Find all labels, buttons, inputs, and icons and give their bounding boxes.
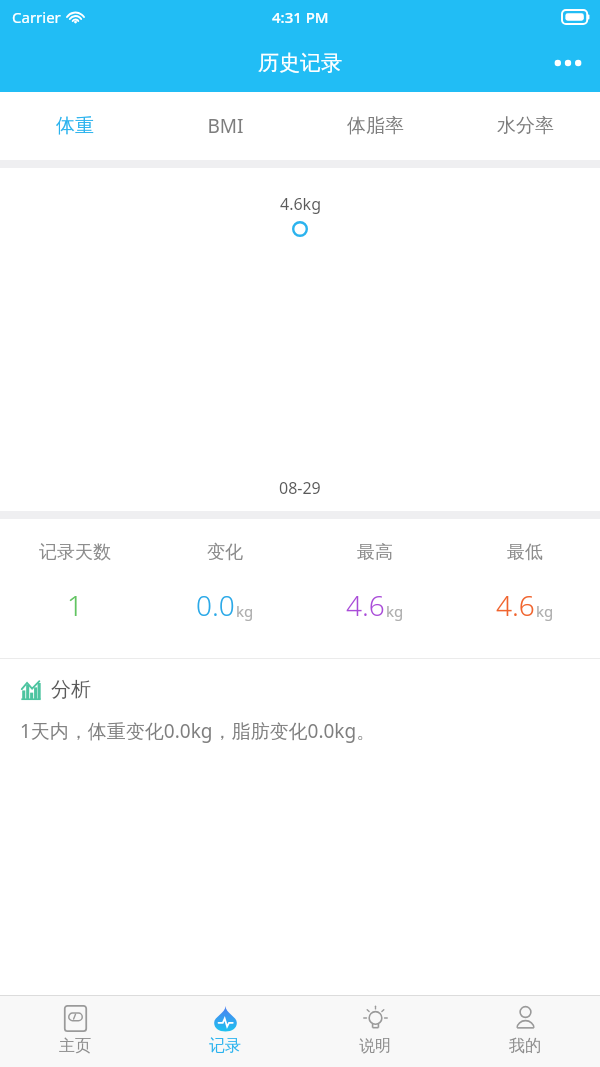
staticText: 记录 — [209, 1036, 241, 1056]
staticText: 08-29 — [279, 477, 321, 499]
staticText: 最高 — [357, 541, 393, 564]
staticText: kg — [386, 601, 404, 621]
staticText: 历史记录 — [258, 50, 342, 76]
button[interactable]: 记录天数 — [0, 519, 150, 658]
staticText: BMI — [207, 113, 244, 139]
staticText: 4:31 PM — [272, 7, 329, 27]
staticText: 4.6 — [496, 586, 535, 624]
staticText: kg — [536, 601, 554, 621]
button[interactable]: 我的 — [450, 996, 600, 1067]
button[interactable]: 说明 — [300, 996, 450, 1067]
staticText: 主页 — [59, 1036, 91, 1056]
button[interactable]: 最低 — [450, 519, 600, 658]
staticText: 最低 — [507, 541, 543, 564]
button[interactable]: More options — [544, 39, 592, 87]
staticText: kg — [236, 601, 254, 621]
button[interactable]: 体重 — [0, 92, 150, 160]
staticText: 1 — [67, 586, 83, 624]
button[interactable]: BMI — [150, 92, 300, 160]
button[interactable]: 体脂率 — [300, 92, 450, 160]
button[interactable]: 最高 — [300, 519, 450, 658]
staticText: 变化 — [207, 541, 243, 564]
staticText: 体脂率 — [347, 114, 404, 138]
staticText: 4.6 — [346, 586, 385, 624]
staticText: 0.0 — [196, 586, 235, 624]
staticText: 记录天数 — [39, 541, 111, 564]
button[interactable]: 主页 — [0, 996, 150, 1067]
staticText: 水分率 — [497, 114, 554, 138]
staticText: 说明 — [359, 1036, 391, 1056]
staticText: 4.6kg — [280, 193, 321, 215]
button[interactable]: 变化 — [150, 519, 300, 658]
staticText: 1天内，体重变化0.0kg，脂肪变化0.0kg。 — [20, 718, 376, 744]
staticText: 分析 — [51, 677, 91, 702]
staticText: 我的 — [509, 1036, 541, 1056]
staticText: 体重 — [56, 114, 94, 138]
button[interactable]: 水分率 — [450, 92, 600, 160]
button[interactable]: 记录 — [150, 996, 300, 1067]
staticText: Carrier — [12, 7, 61, 27]
